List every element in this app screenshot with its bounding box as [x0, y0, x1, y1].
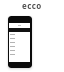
- button[interactable]: [9, 32, 30, 36]
- button[interactable]: [9, 36, 30, 40]
- button[interactable]: [9, 44, 30, 48]
- button[interactable]: [9, 40, 30, 44]
- button[interactable]: [9, 52, 30, 56]
- button[interactable]: [9, 48, 30, 52]
- staticText: ecco: [22, 0, 42, 11]
